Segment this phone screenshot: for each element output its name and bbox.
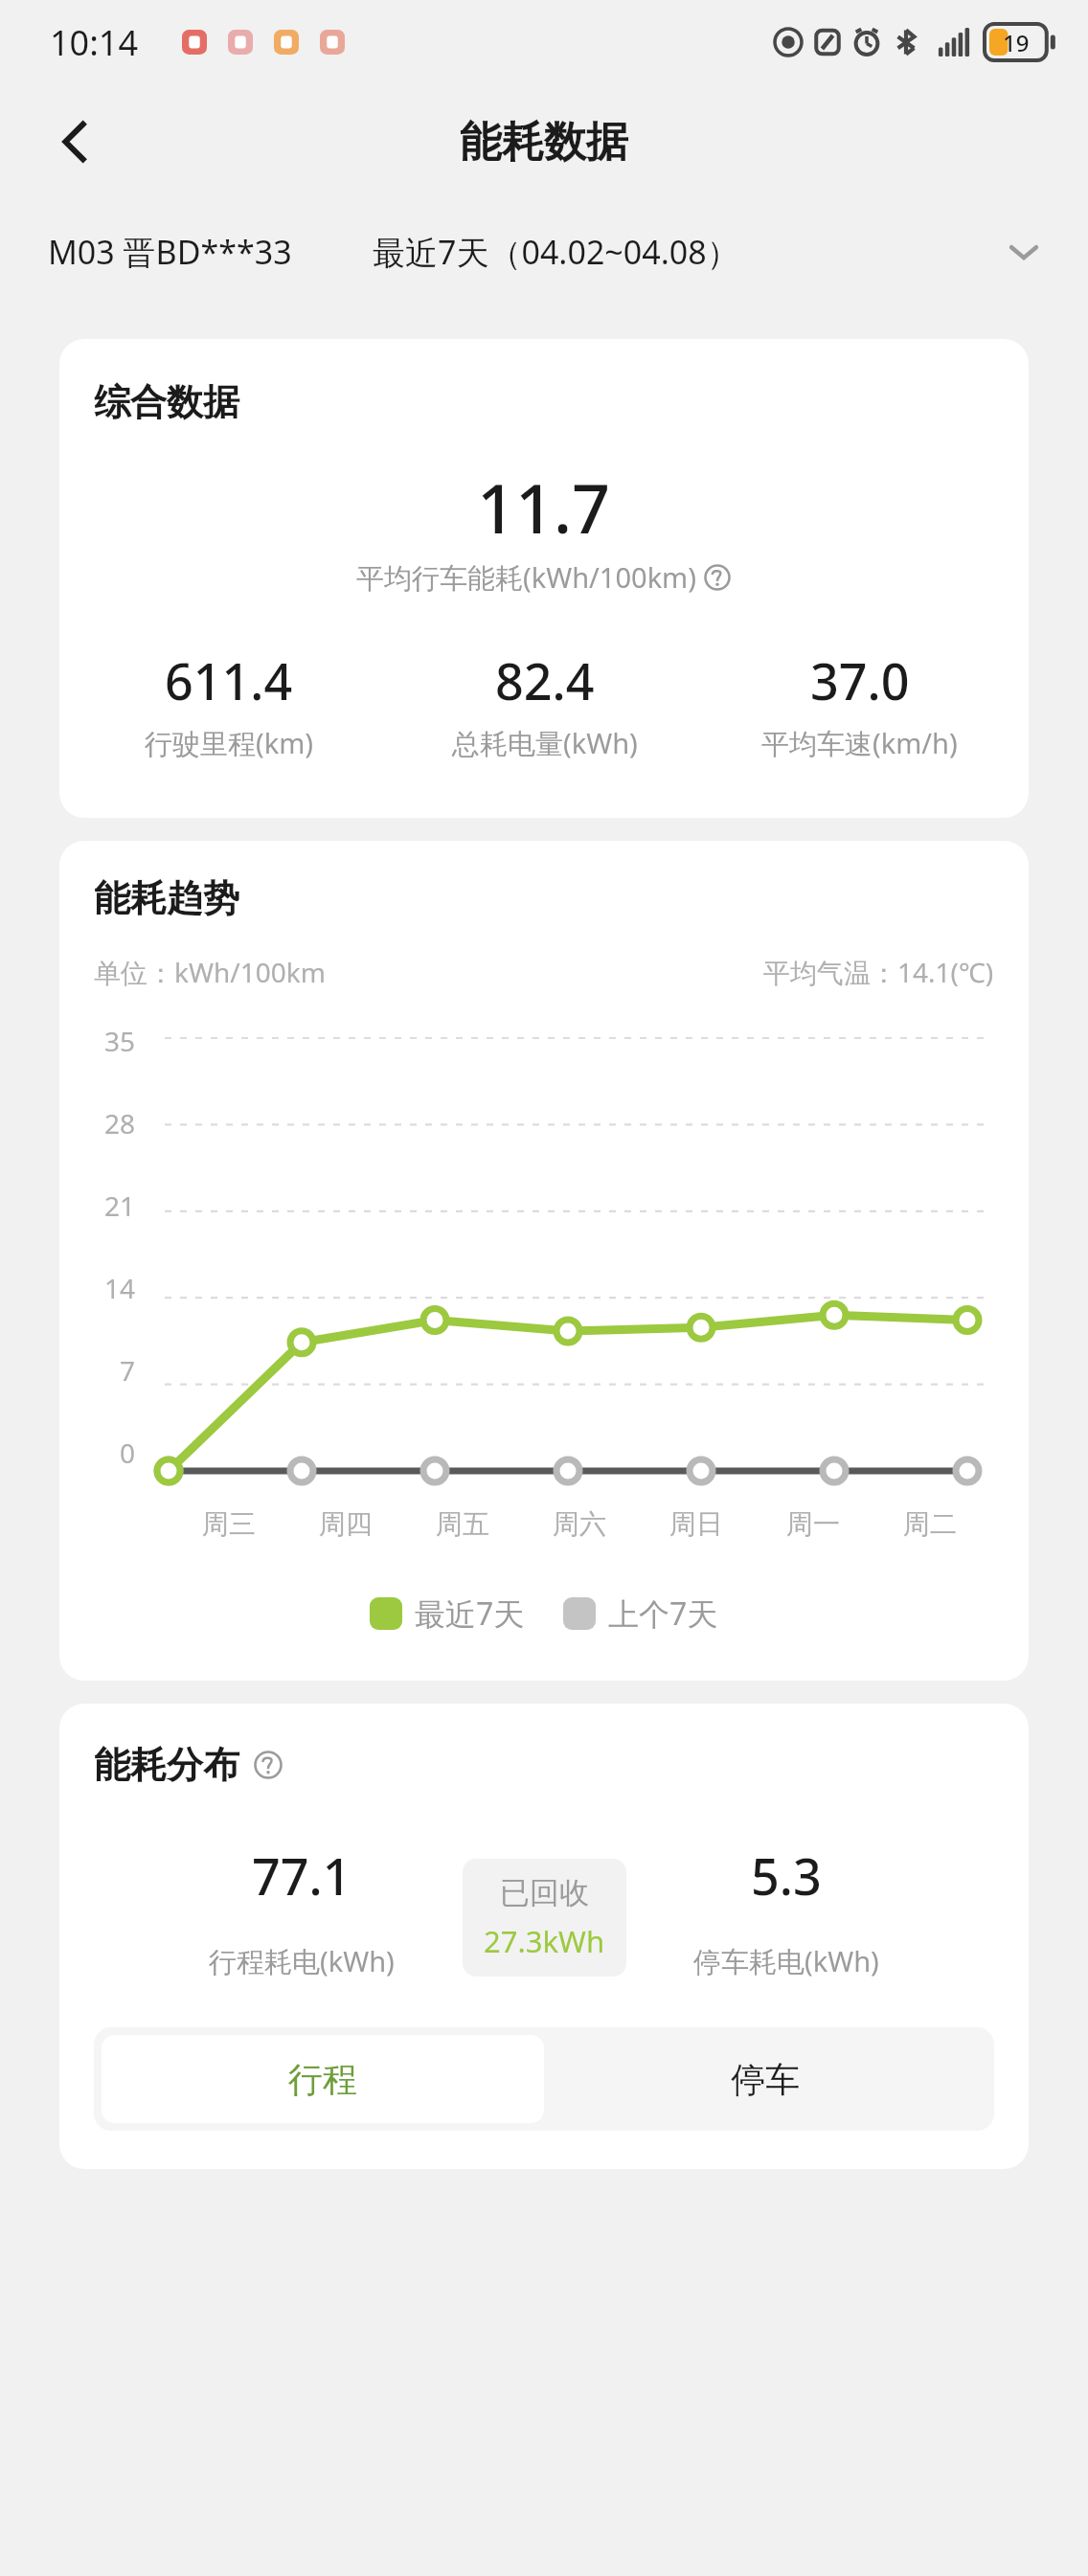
staticText: 行程耗电(kWh) (209, 1942, 395, 1980)
button[interactable]: 上个7天 (563, 1593, 718, 1635)
staticText: 37.0 (810, 646, 910, 714)
staticText: 21 (104, 1187, 136, 1224)
button[interactable]: 停车 (544, 2035, 986, 2123)
staticText: 单位：kWh/100km (94, 954, 326, 990)
staticText: 0 (120, 1435, 136, 1471)
staticText: 11.7 (477, 462, 611, 553)
staticText: 能耗趋势 (94, 875, 239, 921)
staticText: 最近7天 (415, 1593, 525, 1635)
staticText: 总耗电量(kWh) (452, 724, 638, 762)
staticText: 已回收 (500, 1874, 589, 1911)
button[interactable]: 最近7天（04.02~04.08） (373, 220, 1040, 283)
staticText: 10:14 (50, 19, 139, 66)
staticText: 周四 (319, 1507, 373, 1541)
staticText: 27.3kWh (484, 1921, 605, 1961)
staticText: 停车 (731, 2058, 800, 2101)
staticText: 14 (104, 1270, 136, 1306)
staticText: 周六 (553, 1507, 606, 1541)
button[interactable]: M03 晋BD***33 (48, 220, 292, 283)
staticText: 周五 (436, 1507, 489, 1541)
button[interactable]: 行程 (102, 2035, 544, 2123)
staticText: 19 (1003, 27, 1030, 58)
staticText: 行驶里程(km) (145, 724, 314, 762)
staticText: 停车耗电(kWh) (693, 1942, 879, 1980)
staticText: M03 晋BD***33 (48, 230, 292, 274)
staticText: 能耗分布 (94, 1742, 239, 1788)
staticText: 综合数据 (94, 379, 239, 425)
staticText: 周日 (669, 1507, 723, 1541)
staticText: 35 (104, 1023, 136, 1059)
button[interactable]: 说明 (253, 1750, 283, 1780)
button[interactable]: 说明 (703, 563, 732, 592)
staticText: 28 (104, 1105, 136, 1141)
staticText: 平均车速(km/h) (761, 724, 958, 762)
staticText: 82.4 (495, 646, 595, 714)
staticText: 611.4 (165, 646, 293, 714)
staticText: 7 (120, 1352, 136, 1389)
button[interactable]: 最近7天 (370, 1593, 525, 1635)
staticText: 77.1 (252, 1842, 351, 1909)
staticText: 周一 (786, 1507, 840, 1541)
staticText: 周二 (903, 1507, 957, 1541)
staticText: 上个7天 (608, 1593, 718, 1635)
staticText: 平均行车能耗(kWh/100km) (356, 558, 696, 597)
staticText: 能耗数据 (460, 116, 628, 169)
staticText: 平均气温：14.1(℃) (763, 954, 994, 990)
staticText: 5.3 (751, 1842, 822, 1909)
staticText: 最近7天（04.02~04.08） (373, 230, 739, 274)
button[interactable]: Back (38, 105, 111, 178)
staticText: 行程 (288, 2058, 357, 2101)
staticText: 周三 (202, 1507, 256, 1541)
